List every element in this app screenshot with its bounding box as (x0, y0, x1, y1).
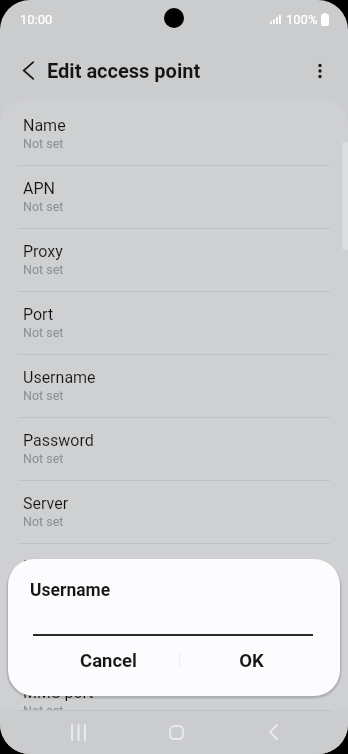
staticText: Not set (23, 325, 64, 340)
staticText: Not set (23, 577, 64, 592)
staticText: Proxy (23, 242, 63, 261)
staticText: 10:00 (20, 12, 53, 27)
button[interactable]: Recent apps (58, 712, 98, 752)
staticText: Username (23, 368, 96, 387)
staticText: MMS proxy (23, 620, 104, 639)
staticText: Not set (23, 703, 64, 711)
staticText: Not set (23, 262, 64, 277)
staticText: Not set (23, 451, 64, 466)
staticText: Password (23, 431, 94, 450)
button[interactable]: APN (0, 166, 348, 229)
button[interactable]: Cancel (38, 641, 179, 681)
button[interactable]: Name (0, 103, 348, 166)
staticText: Not set (23, 388, 64, 403)
button[interactable]: Server (0, 481, 348, 544)
staticText: MMS port (23, 683, 94, 702)
button[interactable]: More options (300, 50, 340, 90)
staticText: Name (23, 116, 66, 135)
button[interactable]: MMS proxy (0, 607, 348, 670)
staticText: OK (239, 650, 264, 672)
staticText: Server (23, 494, 69, 513)
staticText: Cancel (80, 650, 137, 672)
button[interactable]: Home (156, 712, 196, 752)
button[interactable]: Password (0, 418, 348, 481)
button[interactable]: MMSC (0, 544, 348, 607)
button[interactable]: Navigate up (8, 50, 48, 90)
button[interactable]: MMS port (0, 670, 348, 711)
staticText: 100% (286, 12, 318, 27)
staticText: Username (30, 580, 111, 601)
button[interactable]: Port (0, 292, 348, 355)
staticText: Not set (23, 199, 64, 214)
button[interactable]: Username (0, 355, 348, 418)
staticText: Not set (23, 136, 64, 151)
button[interactable]: Back (253, 712, 293, 752)
staticText: Not set (23, 514, 64, 529)
staticText: MMSC (23, 557, 71, 576)
button[interactable]: OK (180, 641, 322, 681)
button[interactable]: Proxy (0, 229, 348, 292)
staticText: Edit access point (47, 59, 201, 82)
staticText: Port (23, 305, 54, 324)
staticText: APN (23, 179, 55, 198)
